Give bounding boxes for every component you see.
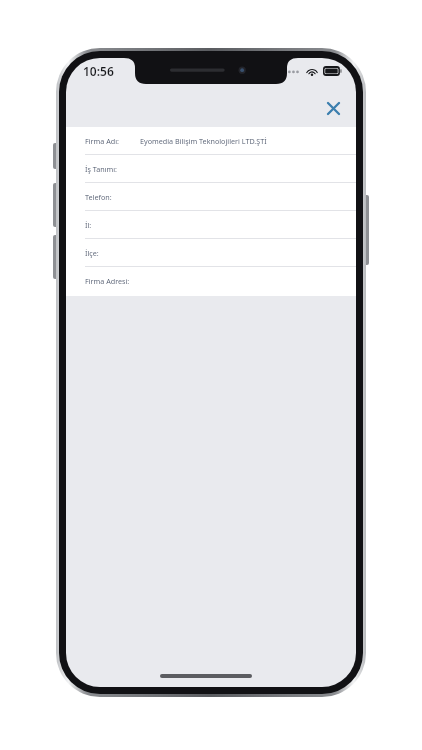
button[interactable]: İl: [66,211,356,238]
button[interactable]: İlçe: [66,239,356,266]
button[interactable]: Telefon: [66,183,356,210]
staticText: Firma Adresi: [85,276,130,286]
staticText: Firma Adı: [85,136,119,146]
button[interactable]: Firma Adresi: [66,267,356,294]
button[interactable]: İş Tanımı: [66,155,356,182]
staticText: İlçe: [85,248,99,258]
staticText: İş Tanımı: [85,164,117,174]
staticText: Eyomedia Bilişim Teknolojileri LTD.ŞTİ [140,136,267,146]
button[interactable]: Kapat [318,93,348,123]
button[interactable]: Firma Adı: [66,127,356,154]
staticText: İl: [85,220,92,230]
staticText: Telefon: [85,192,112,202]
staticText: 10:56 [83,63,114,79]
